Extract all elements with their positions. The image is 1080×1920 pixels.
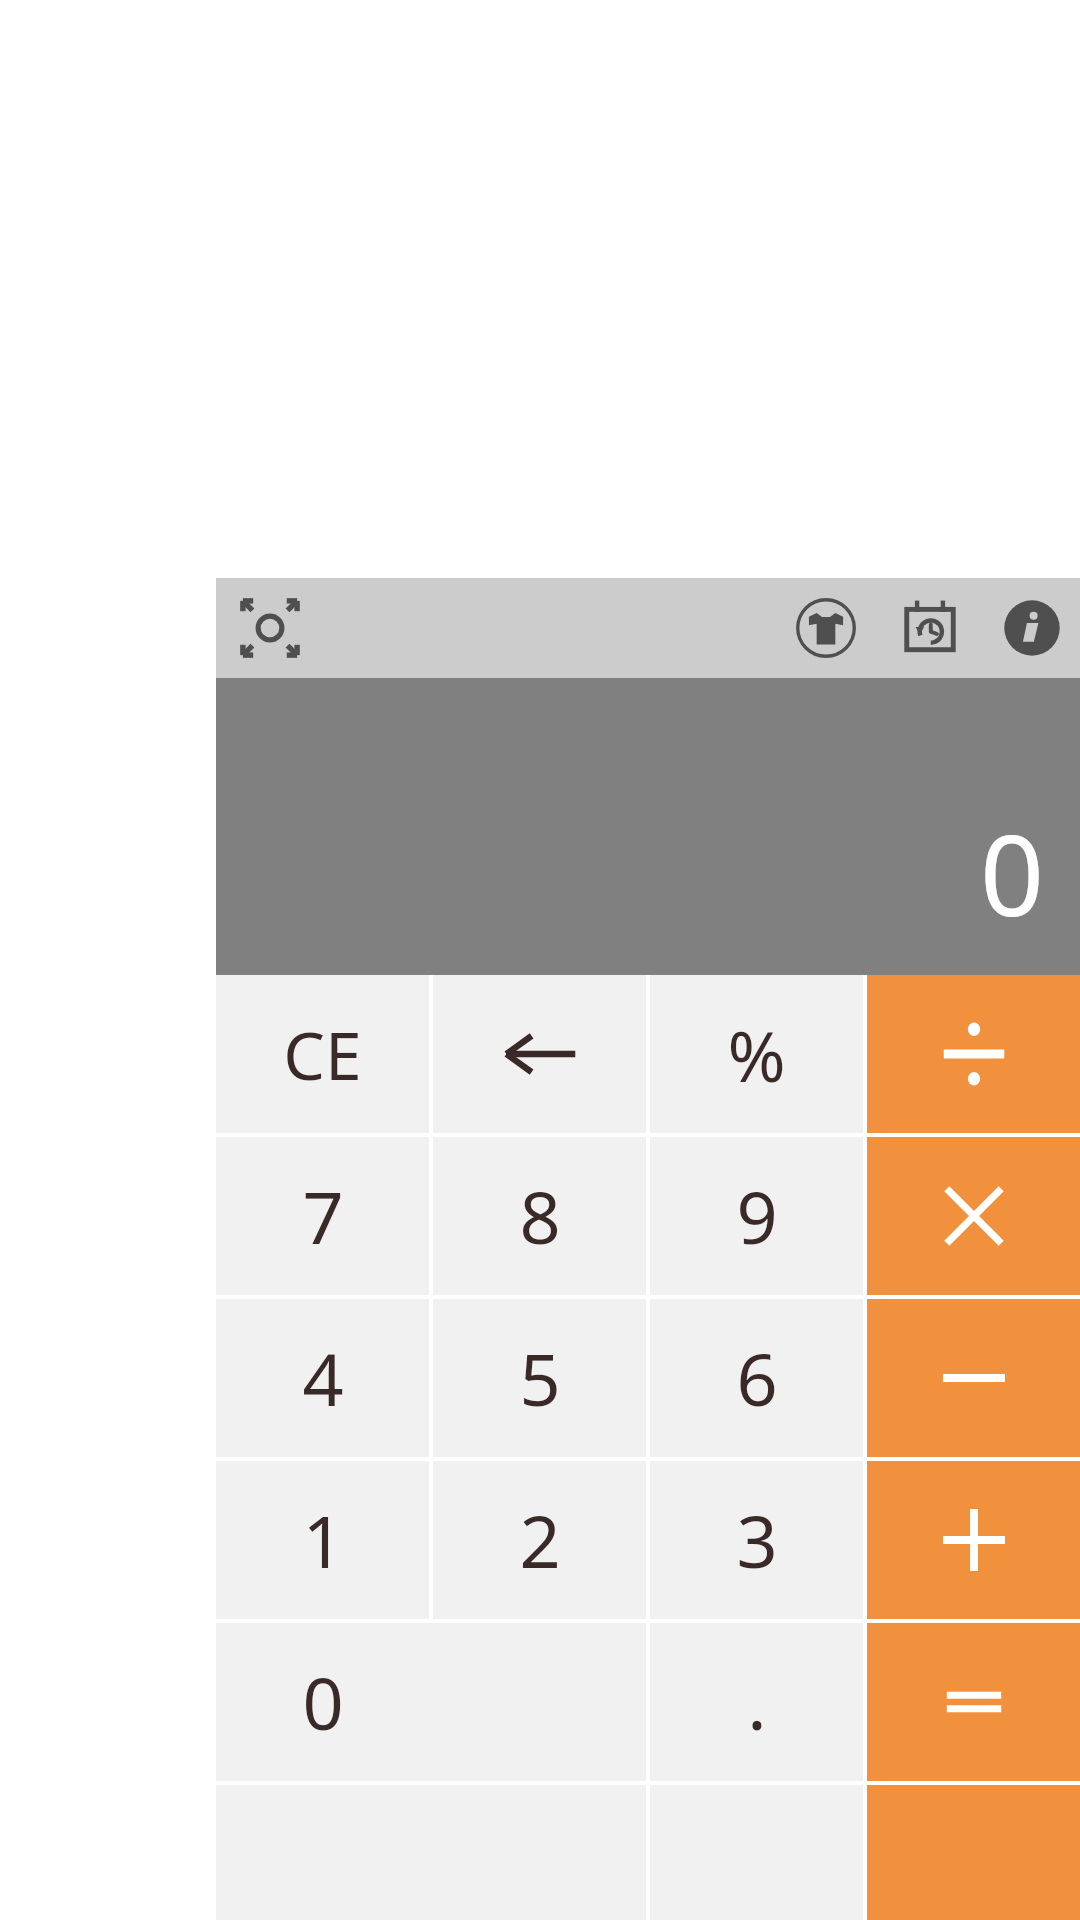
button[interactable]: Resize: [228, 586, 312, 670]
button[interactable]: 9: [650, 1137, 863, 1295]
button[interactable]: Multiply: [867, 1137, 1080, 1295]
button[interactable]: 2: [433, 1461, 646, 1619]
button[interactable]: Divide: [867, 975, 1080, 1133]
staticText: 1: [302, 1491, 344, 1589]
staticText: CE: [283, 1009, 362, 1099]
staticText: 5: [519, 1329, 561, 1427]
button[interactable]: Backspace: [433, 975, 646, 1133]
staticText: 7: [302, 1167, 344, 1265]
button[interactable]: 5: [433, 1299, 646, 1457]
button[interactable]: Plus: [867, 1461, 1080, 1619]
button[interactable]: 1: [216, 1461, 429, 1619]
button[interactable]: Minus: [867, 1299, 1080, 1457]
button[interactable]: Equals: [867, 1623, 1080, 1781]
staticText: 0: [979, 796, 1044, 949]
button[interactable]: 7: [216, 1137, 429, 1295]
staticText: 3: [736, 1491, 778, 1589]
button[interactable]: %: [650, 975, 863, 1133]
button[interactable]: Theme: [784, 586, 868, 670]
staticText: 2: [519, 1491, 561, 1589]
staticText: %: [727, 1007, 786, 1102]
staticText: .: [747, 1653, 767, 1751]
button[interactable]: 8: [433, 1137, 646, 1295]
staticText: 8: [519, 1167, 561, 1265]
staticText: 0: [302, 1653, 344, 1751]
button[interactable]: CE: [216, 975, 429, 1133]
button[interactable]: 0: [216, 1623, 646, 1781]
button[interactable]: Info: [990, 586, 1074, 670]
button[interactable]: 6: [650, 1299, 863, 1457]
button[interactable]: 4: [216, 1299, 429, 1457]
staticText: 9: [736, 1167, 778, 1265]
staticText: 6: [736, 1329, 778, 1427]
button[interactable]: .: [650, 1623, 863, 1781]
button[interactable]: 3: [650, 1461, 863, 1619]
staticText: 4: [302, 1329, 344, 1427]
button[interactable]: History: [888, 586, 972, 670]
